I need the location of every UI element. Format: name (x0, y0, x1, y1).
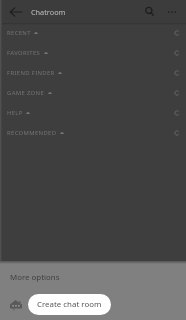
staticText: FRIEND FINDER (7, 69, 55, 77)
button[interactable]: RECENT (2, 23, 186, 43)
button[interactable]: Chat room (10, 299, 22, 311)
button[interactable]: Create chat room (28, 294, 111, 315)
staticText: More options (10, 272, 60, 283)
button[interactable]: GAME ZONE (2, 83, 186, 103)
button[interactable]: RECOMMENDED (2, 123, 186, 143)
button[interactable]: HELP (2, 103, 186, 123)
button[interactable]: Back (9, 5, 23, 19)
staticText: HELP (7, 109, 23, 117)
staticText: RECOMMENDED (7, 129, 57, 137)
staticText: FAVORITES (7, 49, 41, 57)
button[interactable]: FAVORITES (2, 43, 186, 63)
staticText: Chatroom (31, 7, 66, 17)
button[interactable]: Search (140, 2, 159, 21)
button[interactable]: FRIEND FINDER (2, 63, 186, 83)
staticText: GAME ZONE (7, 89, 45, 97)
staticText: RECENT (7, 29, 31, 37)
staticText: Create chat room (37, 299, 102, 310)
